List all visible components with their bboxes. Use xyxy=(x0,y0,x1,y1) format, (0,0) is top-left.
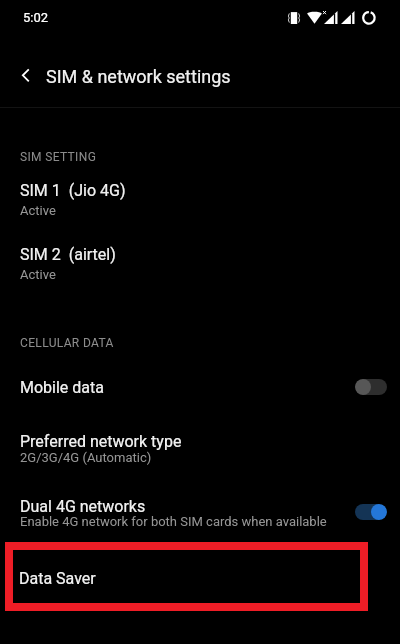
staticText: SIM 1 (Jio 4G) xyxy=(20,181,126,200)
staticText: Data Saver xyxy=(19,569,96,588)
staticText: Enable 4G network for both SIM cards whe… xyxy=(20,514,327,529)
staticText: Active xyxy=(20,203,56,218)
staticText: Preferred network type xyxy=(20,432,182,451)
button[interactable]: Dual 4G networks xyxy=(0,490,400,538)
staticText: CELLULAR DATA xyxy=(20,336,114,350)
staticText: 5:02 xyxy=(23,10,49,25)
button[interactable]: Preferred network type xyxy=(0,424,400,476)
staticText: SIM SETTING xyxy=(20,150,97,164)
button[interactable]: Back xyxy=(4,53,48,99)
staticText: SIM & network settings xyxy=(46,66,231,87)
staticText: Active xyxy=(20,267,56,282)
button[interactable]: Turn off xyxy=(348,496,394,528)
staticText: Mobile data xyxy=(20,378,104,397)
button[interactable]: Data Saver xyxy=(13,550,360,603)
staticText: Dual 4G networks xyxy=(20,497,146,516)
button[interactable]: Turn on xyxy=(348,371,394,403)
button[interactable]: SIM 2 (airtel) xyxy=(0,236,400,290)
staticText: SIM 2 (airtel) xyxy=(20,245,116,264)
staticText: 2G/3G/4G (Automatic) xyxy=(20,450,152,465)
button[interactable]: Mobile data xyxy=(0,368,400,410)
button[interactable]: SIM 1 (Jio 4G) xyxy=(0,172,400,226)
